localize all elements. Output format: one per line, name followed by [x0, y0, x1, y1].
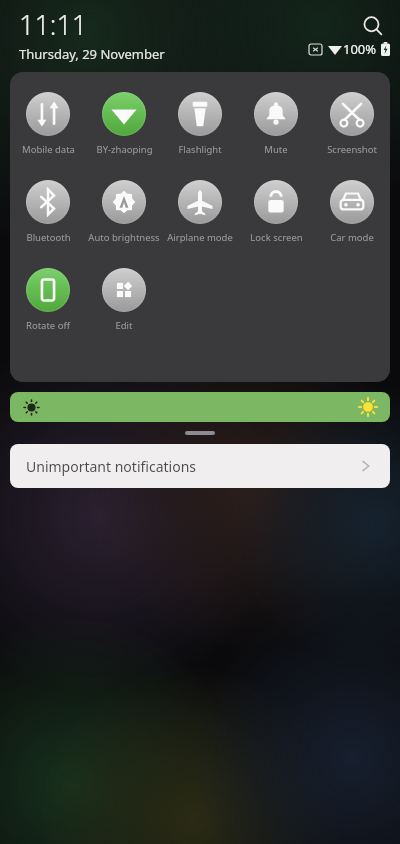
button[interactable]: Bluetooth	[10, 180, 86, 244]
staticText: Unimportant notifications	[26, 457, 196, 476]
staticText: Mobile data	[22, 143, 75, 156]
staticText: 11:11	[19, 6, 88, 43]
staticText: Screenshot	[327, 143, 377, 156]
button[interactable]: Brightness	[10, 392, 390, 422]
button[interactable]: Screenshot	[314, 92, 390, 156]
button[interactable]: Edit	[86, 268, 162, 332]
staticText: Mute	[264, 143, 288, 156]
button[interactable]: Car mode	[314, 180, 390, 244]
button[interactable]: Search	[359, 12, 387, 40]
button[interactable]: Expand	[185, 431, 215, 435]
staticText: Rotate off	[26, 319, 70, 332]
staticText: Flashlight	[178, 143, 222, 156]
button[interactable]: Airplane mode	[162, 180, 238, 244]
staticText: Auto brightness	[88, 231, 160, 244]
staticText: BY-zhaoping	[96, 143, 153, 156]
button[interactable]: Mobile data	[10, 92, 86, 156]
button[interactable]: Flashlight	[162, 92, 238, 156]
button[interactable]: Unimportant notifications	[10, 444, 390, 488]
button[interactable]: Auto brightness	[86, 180, 162, 244]
staticText: Car mode	[330, 231, 374, 244]
staticText: 100%	[343, 40, 377, 58]
button[interactable]: Mute	[238, 92, 314, 156]
button[interactable]: Lock screen	[238, 180, 314, 244]
staticText: Airplane mode	[167, 231, 233, 244]
staticText: Bluetooth	[26, 231, 71, 244]
staticText: Edit	[115, 319, 133, 332]
button[interactable]: Rotate off	[10, 268, 86, 332]
button[interactable]: BY-zhaoping	[86, 92, 162, 156]
staticText: Lock screen	[250, 231, 303, 244]
staticText: Thursday, 29 November	[19, 45, 165, 63]
